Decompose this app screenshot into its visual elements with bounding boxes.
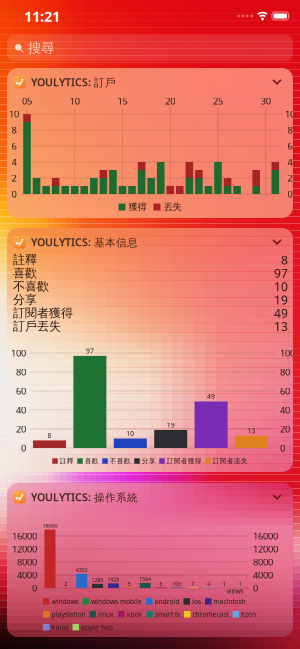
- staticText: 8: [11, 124, 16, 136]
- staticText: 60: [16, 385, 26, 397]
- staticText: 訂閱者獲得: [167, 457, 202, 465]
- button[interactable]: 展開小組件: [269, 491, 285, 504]
- staticText: 0: [253, 582, 258, 594]
- staticText: 25: [213, 95, 223, 107]
- staticText: 2: [11, 172, 16, 184]
- staticText: 0: [280, 442, 285, 454]
- staticText: android: [154, 597, 179, 606]
- staticText: 105: [172, 580, 181, 587]
- staticText: 獲得: [128, 201, 146, 213]
- staticText: xbox: [126, 610, 142, 619]
- staticText: 0: [21, 442, 26, 454]
- staticText: 15: [117, 95, 127, 107]
- staticText: 4000: [253, 569, 273, 581]
- button[interactable]: 展開小組件: [269, 236, 285, 249]
- staticText: 100: [11, 347, 26, 359]
- staticText: 分享: [13, 292, 37, 307]
- button[interactable]: 展開小組件: [269, 76, 285, 89]
- staticText: 16000: [12, 530, 37, 542]
- staticText: 4: [207, 580, 210, 587]
- staticText: 2: [287, 172, 292, 184]
- staticText: 10: [9, 108, 19, 120]
- staticText: 30: [261, 95, 271, 107]
- staticText: 註釋: [60, 457, 74, 465]
- staticText: 16000: [253, 530, 278, 542]
- staticText: 8000: [253, 556, 273, 568]
- staticText: 0: [11, 188, 16, 200]
- staticText: 97: [274, 265, 288, 281]
- staticText: views: [226, 587, 243, 595]
- staticText: ios: [192, 597, 201, 606]
- staticText: 40: [16, 404, 26, 416]
- staticText: 0: [287, 188, 292, 200]
- staticText: 49: [207, 392, 215, 401]
- staticText: 18000: [42, 522, 57, 529]
- staticText: 4000: [17, 569, 37, 581]
- staticText: linux: [98, 610, 114, 619]
- staticText: 19: [274, 292, 288, 308]
- staticText: 20: [165, 95, 175, 107]
- staticText: 4: [287, 156, 292, 168]
- staticText: YOULYTICS: 基本信息: [31, 235, 138, 249]
- button[interactable]: 18000: [7, 483, 293, 637]
- staticText: 20: [16, 423, 26, 435]
- staticText: 訂戶丟失: [13, 319, 61, 334]
- staticText: 2: [64, 580, 67, 588]
- staticText: 不喜歡: [13, 279, 49, 294]
- staticText: 80: [280, 366, 290, 378]
- staticText: 0: [32, 582, 37, 594]
- staticText: 1: [223, 580, 226, 588]
- staticText: 4: [11, 156, 16, 168]
- button[interactable]: 搜尋: [7, 35, 293, 61]
- staticText: 8: [47, 431, 51, 440]
- staticText: 5: [128, 580, 131, 587]
- staticText: 8: [281, 252, 288, 268]
- staticText: 13: [247, 426, 255, 435]
- staticText: playstation: [51, 610, 85, 619]
- staticText: 11:21: [24, 6, 60, 26]
- staticText: macintosh: [213, 597, 245, 606]
- staticText: 05: [22, 95, 32, 107]
- staticText: 13: [274, 318, 288, 334]
- staticText: tizen: [241, 610, 256, 619]
- staticText: YOULYTICS: 操作系統: [31, 490, 138, 504]
- staticText: 4352: [76, 566, 88, 573]
- staticText: 80: [16, 366, 26, 378]
- staticText: kaios: [51, 623, 68, 632]
- staticText: 12000: [253, 543, 278, 555]
- staticText: 訂閱者獲得: [13, 306, 73, 320]
- staticText: 49: [274, 305, 288, 321]
- staticText: 分享: [142, 457, 156, 465]
- staticText: 10: [126, 429, 134, 438]
- staticText: 1285: [91, 576, 103, 583]
- staticText: 6: [159, 580, 162, 587]
- staticText: 喜歡: [85, 457, 99, 465]
- staticText: 訂閱者流失: [213, 457, 248, 465]
- staticText: 60: [280, 385, 290, 397]
- staticText: 100: [280, 347, 295, 359]
- staticText: 1428: [107, 576, 119, 583]
- staticText: 40: [280, 404, 290, 416]
- staticText: YOULYTICS: 訂戶: [31, 75, 116, 89]
- staticText: 搜尋: [28, 40, 54, 56]
- staticText: 不喜歡: [110, 457, 131, 465]
- staticText: 1: [239, 580, 242, 588]
- staticText: 喜歡: [13, 266, 37, 280]
- staticText: 註釋: [13, 252, 37, 267]
- staticText: 8: [287, 124, 292, 136]
- staticText: apple tvos: [81, 623, 113, 632]
- staticText: 12000: [12, 543, 37, 555]
- staticText: 6: [11, 140, 16, 152]
- staticText: 10: [285, 108, 295, 120]
- staticText: 6: [287, 140, 292, 152]
- staticText: 20: [280, 423, 290, 435]
- staticText: chromecast: [192, 610, 228, 619]
- staticText: 丟失: [163, 201, 181, 213]
- staticText: 7: [191, 580, 194, 587]
- button[interactable]: 8: [7, 228, 293, 472]
- button[interactable]: YOULYTICS: 訂戶: [7, 68, 293, 218]
- staticText: smart tv: [155, 610, 180, 619]
- staticText: 10: [274, 278, 288, 294]
- staticText: windows mobile: [91, 597, 142, 606]
- staticText: 19: [167, 420, 175, 429]
